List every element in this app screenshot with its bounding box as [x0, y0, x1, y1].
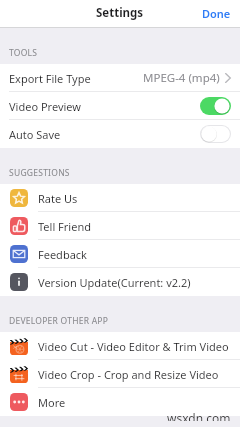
staticText: Done	[202, 6, 231, 21]
staticText: MPEG-4 (mp4)	[143, 70, 220, 86]
staticText: Settings	[96, 5, 144, 21]
staticText: Rate Us	[38, 191, 78, 206]
button[interactable]: Tell Friend	[0, 212, 240, 240]
staticText: TOOLS	[9, 47, 38, 59]
staticText: Export File Type	[9, 71, 91, 86]
button[interactable]: Rate Us	[0, 184, 240, 212]
button[interactable]: More	[0, 388, 240, 416]
button[interactable]: Feedback	[0, 240, 240, 268]
staticText: Tell Friend	[38, 219, 91, 234]
staticText: wsxdn.com	[167, 410, 231, 421]
staticText: Video Preview	[9, 99, 81, 114]
staticText: Video Cut - Video Editor & Trim Video	[38, 339, 229, 354]
staticText: Feedback	[38, 247, 87, 262]
button[interactable]: Export File Type	[0, 64, 240, 92]
staticText: Version Update(Current: v2.2)	[38, 275, 191, 290]
staticText: Video Crop - Crop and Resize Video	[38, 367, 219, 382]
button[interactable]: Auto Save	[0, 120, 240, 148]
button[interactable]: Video Preview	[0, 92, 240, 120]
button[interactable]: Video Cut - Video Editor & Trim Video	[0, 332, 240, 360]
staticText: Auto Save	[9, 127, 61, 142]
button[interactable]: Version Update(Current: v2.2)	[0, 268, 240, 296]
staticText: More	[38, 395, 66, 410]
staticText: SUGGESTIONS	[9, 167, 70, 179]
staticText: DEVELOPER OTHER APP	[9, 315, 109, 327]
button[interactable]: Video Crop - Crop and Resize Video	[0, 360, 240, 388]
button[interactable]: Done	[193, 2, 240, 25]
